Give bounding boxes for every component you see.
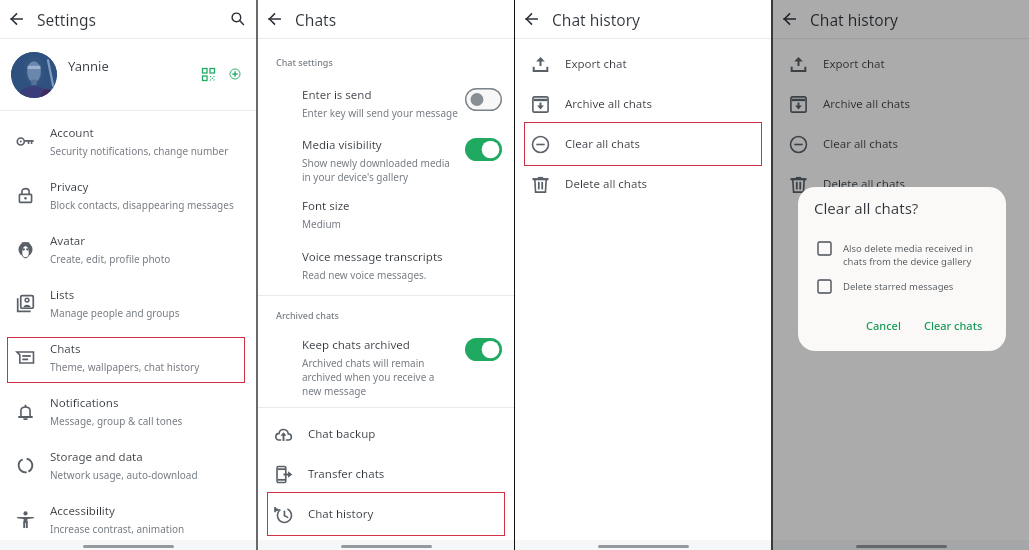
staticText: Export chat [565,56,627,72]
staticText: Clear chats [924,318,983,333]
button[interactable]: Chats [0,330,256,384]
staticText: Delete all chats [565,176,648,192]
button[interactable]: Add [223,62,247,86]
staticText: Also delete media received in [843,242,974,255]
staticText: Keep chats archived [302,337,410,353]
button[interactable]: Media visibility [258,137,514,184]
button[interactable]: Export chat [773,44,1029,84]
button[interactable]: QR code [196,62,220,86]
button[interactable]: Notifications [0,384,256,438]
staticText: Storage and data [50,449,143,465]
staticText: Notifications [50,395,119,411]
staticText: Chat backup [308,426,376,442]
staticText: Yannie [68,57,109,75]
button[interactable]: Lists [0,276,256,330]
staticText: Lists [50,287,75,303]
button[interactable]: Chat backup [258,414,514,454]
staticText: Chat history [308,506,374,522]
staticText: Archived chats will remain [302,356,425,370]
staticText: Delete all chats [823,176,906,192]
staticText: Transfer chats [308,466,385,482]
staticText: chats from the device gallery [843,255,972,268]
button[interactable]: Accessibility [0,492,256,546]
staticText: Create, edit, profile photo [50,252,171,266]
staticText: Increase contrast, animation [50,522,185,536]
staticText: Account [50,125,94,141]
button[interactable]: Account [0,114,256,168]
button[interactable]: Archive all chats [515,84,771,124]
button[interactable]: Search [225,6,251,32]
staticText: Settings [37,9,96,30]
staticText: Archive all chats [823,96,910,112]
staticText: Chat history [810,9,898,30]
button[interactable]: Cancel [858,312,909,339]
button[interactable]: Also delete media received in [798,242,1006,268]
staticText: Chats [295,9,337,30]
staticText: in your device's gallery [302,170,409,184]
button[interactable]: Delete all chats [773,164,1029,204]
staticText: Cancel [866,318,901,333]
staticText: archived when you receive a [302,370,435,384]
staticText: Clear all chats [823,136,899,152]
staticText: Message, group & call tones [50,414,183,428]
button[interactable]: Clear all chats [773,124,1029,164]
staticText: Chats [50,341,81,357]
button[interactable]: Back [519,6,545,32]
button[interactable]: Storage and data [0,438,256,492]
staticText: Avatar [50,233,85,249]
staticText: Clear all chats [565,136,641,152]
button[interactable]: Back [262,6,288,32]
staticText: Enter key will send your message [302,106,458,120]
staticText: Medium [302,217,341,231]
staticText: Media visibility [302,137,382,153]
staticText: Voice message transcripts [302,249,443,265]
button[interactable]: Delete all chats [515,164,771,204]
staticText: Manage people and groups [50,306,180,320]
button[interactable]: Keep chats archived [258,337,514,398]
button[interactable]: Voice message transcripts [258,249,514,282]
button[interactable]: Back [4,6,30,32]
button[interactable]: Back [777,6,803,32]
button[interactable]: Transfer chats [258,454,514,494]
button[interactable]: Yannie [0,39,256,110]
staticText: Block contacts, disappearing messages [50,198,234,212]
button[interactable]: Enter is send [258,87,514,120]
staticText: Theme, wallpapers, chat history [50,360,200,374]
staticText: Clear all chats? [814,198,919,218]
staticText: Read new voice messages. [302,268,427,282]
staticText: Accessibility [50,503,115,519]
button[interactable]: Delete starred messages [798,280,1006,293]
button[interactable]: Archive all chats [773,84,1029,124]
staticText: new message [302,384,367,398]
button[interactable]: Export chat [515,44,771,84]
staticText: Network usage, auto-download [50,468,198,482]
staticText: Show newly downloaded media [302,156,450,170]
staticText: Privacy [50,179,89,195]
staticText: Archive all chats [565,96,652,112]
staticText: Chat history [552,9,640,30]
staticText: Archived chats [276,309,339,321]
staticText: Font size [302,198,350,214]
button[interactable]: Clear all chats [515,124,771,164]
button[interactable]: Font size [258,198,514,231]
button[interactable]: Chat history [258,494,514,534]
staticText: Chat settings [276,56,333,68]
staticText: Delete starred messages [843,280,954,293]
staticText: Export chat [823,56,885,72]
button[interactable]: Avatar [0,222,256,276]
button[interactable]: Clear chats [916,312,991,339]
staticText: Security notifications, change number [50,144,229,158]
staticText: Enter is send [302,87,372,103]
button[interactable]: Privacy [0,168,256,222]
